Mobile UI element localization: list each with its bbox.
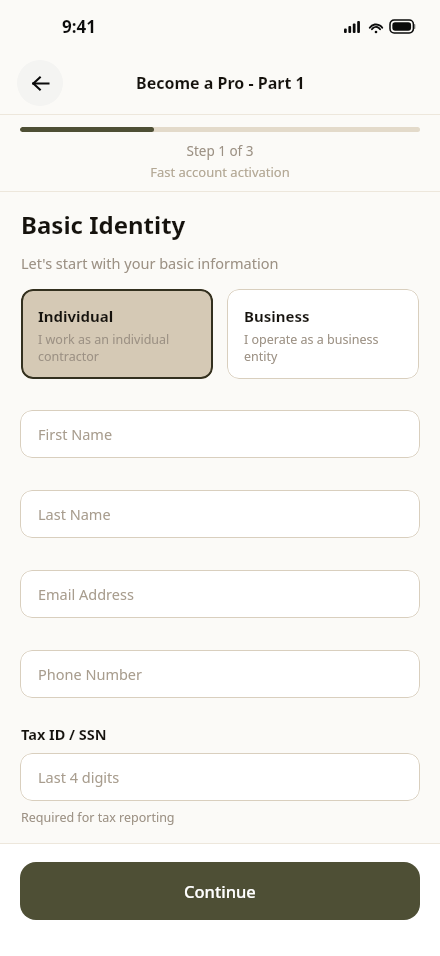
staticText: First Name	[38, 424, 113, 444]
staticText: Phone Number	[38, 664, 143, 684]
staticText: Required for tax reporting	[21, 809, 175, 826]
staticText: Email Address	[38, 584, 134, 604]
button[interactable]: First Name	[20, 410, 420, 458]
staticText: I work as an individual contractor	[38, 331, 203, 364]
button[interactable]: Last Name	[20, 490, 420, 538]
staticText: 9:41	[62, 15, 96, 38]
staticText: Continue	[184, 880, 256, 902]
button[interactable]: Continue	[20, 862, 420, 920]
button[interactable]: Last 4 digits	[20, 753, 420, 801]
staticText: Let's start with your basic information	[21, 253, 279, 273]
staticText: Tax ID / SSN	[21, 724, 107, 744]
button[interactable]: Email Address	[20, 570, 420, 618]
staticText: Become a Pro - Part 1	[136, 72, 305, 94]
button[interactable]: Business	[227, 289, 419, 379]
staticText: I operate as a business entity	[244, 331, 409, 364]
button[interactable]: Individual	[21, 289, 213, 379]
button[interactable]: Phone Number	[20, 650, 420, 698]
staticText: Business	[244, 306, 310, 326]
staticText: Basic Identity	[21, 208, 186, 241]
staticText: Languages Spoken	[21, 846, 162, 866]
staticText: Step 1 of 3	[20, 142, 420, 160]
staticText: Last 4 digits	[38, 767, 120, 787]
staticText: Last Name	[38, 504, 111, 524]
staticText: Fast account activation	[20, 163, 420, 181]
button[interactable]: Back	[17, 60, 63, 106]
staticText: Individual	[38, 306, 114, 326]
